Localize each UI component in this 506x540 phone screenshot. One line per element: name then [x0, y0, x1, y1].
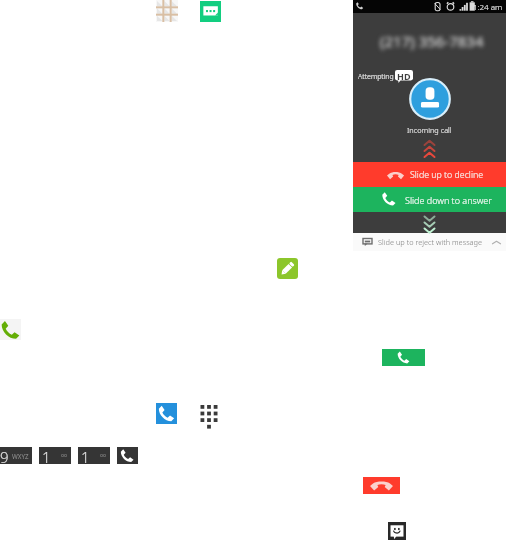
- staticText: HD: [397, 70, 411, 82]
- button[interactable]: Edit: [277, 258, 298, 279]
- button[interactable]: Dialpad: [199, 403, 219, 424]
- staticText: 1:24 am: [473, 1, 503, 12]
- button[interactable]: Call: [117, 447, 138, 464]
- button[interactable]: Messages: [200, 1, 221, 22]
- staticText: WXYZ: [12, 452, 29, 460]
- button[interactable]: Apps grid: [156, 0, 178, 22]
- staticText: Incoming call: [407, 125, 452, 135]
- button[interactable]: Answer call: [382, 349, 425, 366]
- staticText: oo: [100, 452, 107, 459]
- staticText: Attempting: [358, 72, 394, 82]
- button[interactable]: Slide down to answer: [353, 187, 506, 212]
- button[interactable]: End call: [363, 477, 400, 494]
- staticText: 9: [0, 447, 9, 463]
- button[interactable]: 9: [0, 447, 32, 464]
- button[interactable]: 1: [39, 447, 71, 464]
- staticText: oo: [61, 452, 68, 459]
- staticText: 1: [42, 447, 51, 463]
- button[interactable]: Send message: [388, 522, 406, 540]
- button[interactable]: Slide up to decline: [353, 162, 506, 187]
- button[interactable]: Slide up to reject with message: [353, 233, 506, 251]
- staticText: (217) 356-7834: [380, 31, 484, 51]
- staticText: Slide down to answer: [405, 194, 492, 206]
- button[interactable]: Call: [0, 319, 21, 340]
- button[interactable]: Call: [156, 403, 177, 424]
- staticText: 1: [81, 447, 90, 463]
- staticText: Slide up to reject with message: [378, 237, 483, 247]
- button[interactable]: 1: [78, 447, 110, 464]
- staticText: Slide up to decline: [410, 169, 484, 181]
